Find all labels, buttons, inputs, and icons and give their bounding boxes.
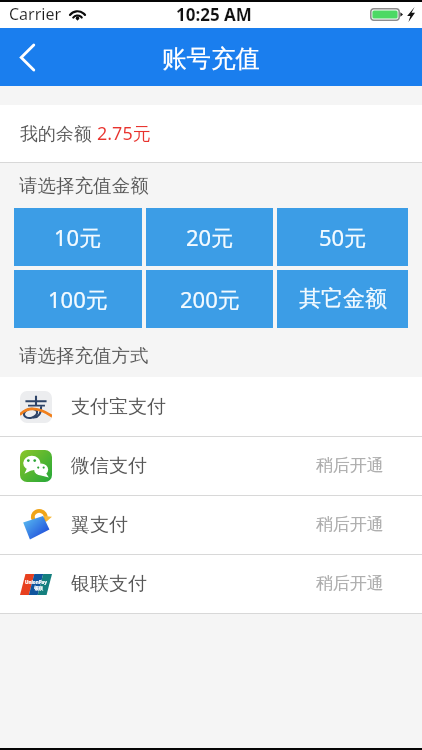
staticText: 50元 xyxy=(319,222,367,252)
staticText: UnionPay xyxy=(25,579,47,585)
staticText: 2.75元 xyxy=(97,121,151,146)
staticText: 稍后开通 xyxy=(316,514,384,535)
staticText: 我的余额 xyxy=(20,121,97,146)
staticText: 请选择充值方式 xyxy=(19,344,149,367)
staticText: 稍后开通 xyxy=(316,455,384,476)
button[interactable]: 我的余额 xyxy=(0,105,422,162)
staticText: 微信支付 xyxy=(71,454,147,478)
staticText: 稍后开通 xyxy=(316,573,384,594)
staticText: 账号充值 xyxy=(162,43,260,74)
staticText: Carrier xyxy=(9,3,62,25)
button[interactable]: 200元 xyxy=(146,270,273,328)
button[interactable]: 50元 xyxy=(277,208,408,266)
staticText: 10元 xyxy=(54,222,102,252)
button[interactable]: 支付宝支付 xyxy=(0,377,422,436)
staticText: 100元 xyxy=(48,284,108,314)
staticText: 20元 xyxy=(186,222,234,252)
button[interactable]: 10元 xyxy=(14,208,142,266)
button[interactable]: 20元 xyxy=(146,208,273,266)
staticText: 请选择充值金额 xyxy=(19,174,149,197)
staticText: 10:25 AM xyxy=(176,3,252,26)
staticText: 银联支付 xyxy=(71,572,147,596)
staticText: 银联 xyxy=(34,586,44,592)
button[interactable]: 其它金额 xyxy=(277,270,408,328)
button[interactable]: 微信支付 xyxy=(0,436,422,495)
staticText: 其它金额 xyxy=(299,285,387,313)
button[interactable]: Back xyxy=(0,28,54,86)
button[interactable]: 100元 xyxy=(14,270,142,328)
button[interactable]: UnionPay xyxy=(0,554,422,613)
staticText: 翼支付 xyxy=(71,513,128,537)
staticText: 200元 xyxy=(180,284,240,314)
button[interactable]: 翼支付 xyxy=(0,495,422,554)
staticText: 支付宝支付 xyxy=(71,395,166,419)
